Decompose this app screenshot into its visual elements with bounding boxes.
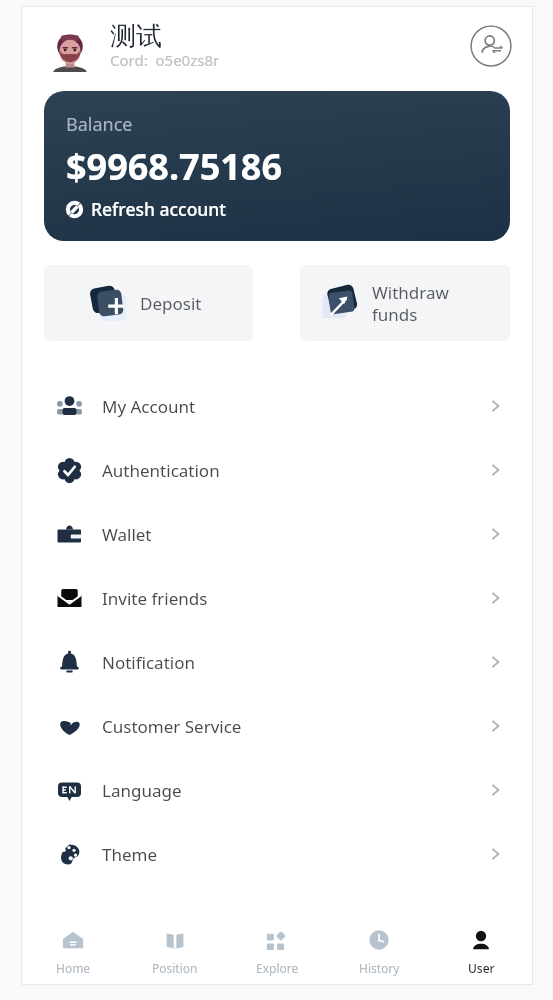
button[interactable]: Notification <box>22 630 532 694</box>
button[interactable]: Deposit <box>44 265 253 341</box>
staticText: Invite friends <box>102 587 208 610</box>
button[interactable]: Balance <box>44 91 510 241</box>
staticText: Position <box>152 960 198 976</box>
button[interactable]: Explore <box>226 906 328 984</box>
staticText: User <box>468 960 495 976</box>
staticText: My Account <box>102 395 196 418</box>
button[interactable]: User <box>430 906 532 984</box>
staticText: Balance <box>66 112 133 137</box>
button[interactable]: Position <box>124 906 226 984</box>
staticText: Explore <box>256 960 299 976</box>
button[interactable]: Language <box>22 758 532 822</box>
button[interactable]: Theme <box>22 822 532 886</box>
button[interactable]: Invite friends <box>22 566 532 630</box>
staticText: Theme <box>102 843 158 866</box>
staticText: Wallet <box>102 523 152 546</box>
button[interactable]: History <box>328 906 430 984</box>
staticText: Authentication <box>102 459 220 482</box>
button[interactable]: Switch account <box>470 25 512 67</box>
button[interactable]: Withdraw funds <box>300 265 510 341</box>
staticText: Deposit <box>140 292 202 315</box>
staticText: Withdraw funds <box>372 281 449 326</box>
staticText: Language <box>102 779 182 802</box>
staticText: Home <box>56 960 91 976</box>
button[interactable]: My Account <box>22 374 532 438</box>
staticText: 测试 <box>110 20 162 53</box>
staticText: $9968.75186 <box>66 142 283 191</box>
staticText: Refresh account <box>91 197 227 221</box>
staticText: Notification <box>102 651 195 674</box>
button[interactable]: Home <box>22 906 124 984</box>
button[interactable]: Wallet <box>22 502 532 566</box>
staticText: Customer Service <box>102 715 242 738</box>
button[interactable]: Customer Service <box>22 694 532 758</box>
button[interactable]: Authentication <box>22 438 532 502</box>
staticText: History <box>359 960 400 976</box>
staticText: Cord: o5e0zs8r <box>110 50 220 70</box>
